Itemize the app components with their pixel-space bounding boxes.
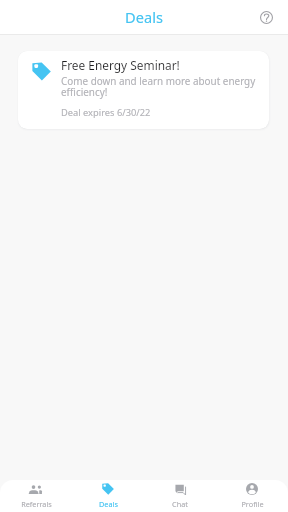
staticText: Profile (241, 499, 264, 509)
button[interactable]: Free Energy Seminar! (18, 51, 269, 129)
button[interactable]: Help (253, 4, 279, 30)
staticText: Deals (125, 7, 163, 27)
staticText: Free Energy Seminar! (61, 57, 180, 73)
button[interactable]: Referrals (0, 480, 72, 512)
staticText: Deal expires 6/30/22 (61, 106, 151, 119)
staticText: Chat (172, 499, 188, 509)
button[interactable]: Chat (144, 480, 216, 512)
button[interactable]: Deals (72, 480, 144, 512)
staticText: Deals (99, 499, 118, 509)
button[interactable]: Profile (216, 480, 288, 512)
staticText: Come down and learn more about energy ef… (61, 74, 256, 99)
staticText: Referrals (21, 499, 52, 509)
